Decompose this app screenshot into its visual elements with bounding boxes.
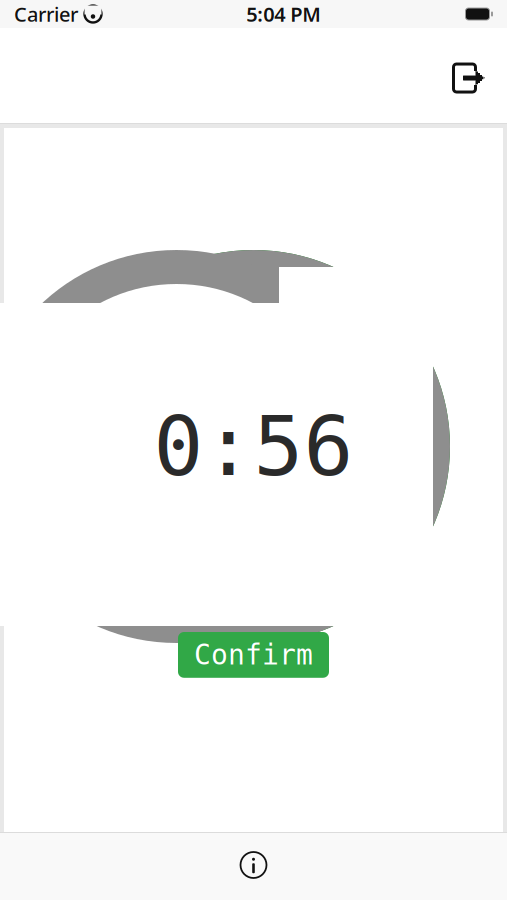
staticText: 0:56 <box>153 400 353 493</box>
staticText: Confirm <box>194 639 313 671</box>
staticText: Carrier <box>14 1 78 27</box>
button[interactable]: Log out <box>445 54 493 102</box>
button[interactable]: Info <box>223 836 283 894</box>
staticText: 5:04 PM <box>246 1 321 27</box>
button[interactable]: Confirm <box>178 632 329 678</box>
